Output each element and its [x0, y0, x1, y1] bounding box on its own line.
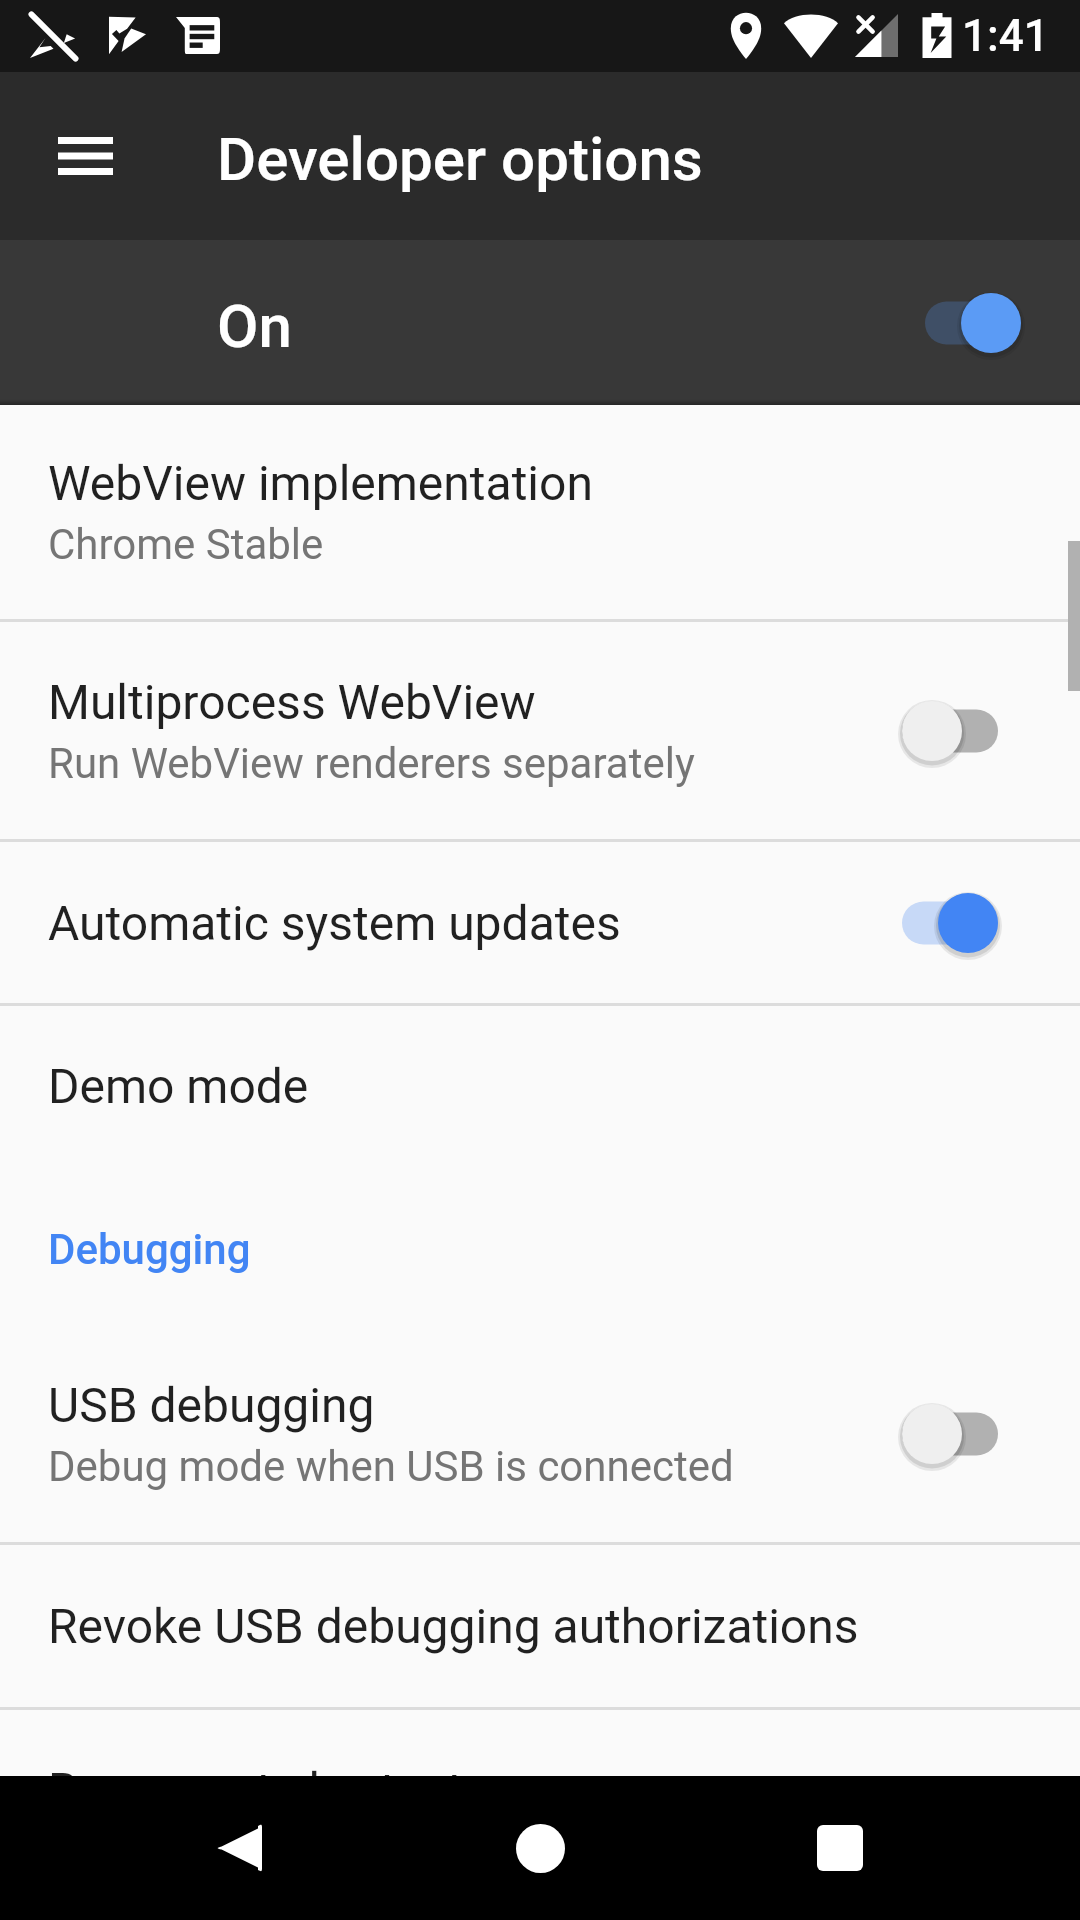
button[interactable]: Open navigation menu: [30, 101, 140, 211]
staticText: WebView implementation: [48, 455, 593, 511]
button[interactable]: Automatic system updates: [0, 842, 1080, 1003]
button[interactable]: Home: [490, 1798, 590, 1898]
staticText: Bug report shortcut: [48, 1762, 463, 1776]
staticText: Multiprocess WebView: [48, 674, 536, 730]
staticText: On: [217, 291, 292, 361]
staticText: Demo mode: [48, 1058, 309, 1114]
staticText: Debugging: [48, 1225, 251, 1274]
button[interactable]: Recent apps: [790, 1798, 890, 1898]
staticText: Debug mode when USB is connected: [48, 1442, 734, 1491]
staticText: 1:41: [962, 10, 1049, 62]
staticText: Chrome Stable: [48, 520, 324, 569]
staticText: Revoke USB debugging authorizations: [48, 1598, 859, 1654]
staticText: Developer options: [217, 124, 703, 194]
button[interactable]: Multiprocess WebView: [0, 622, 1080, 839]
button[interactable]: Back: [190, 1798, 290, 1898]
button[interactable]: Revoke USB debugging authorizations: [0, 1545, 1080, 1707]
button[interactable]: WebView implementation: [0, 405, 1080, 619]
button[interactable]: USB debugging: [0, 1326, 1080, 1542]
button[interactable]: Demo mode: [0, 1006, 1080, 1166]
staticText: Automatic system updates: [48, 895, 621, 951]
staticText: Run WebView renderers separately: [48, 739, 695, 788]
staticText: USB debugging: [48, 1377, 375, 1433]
button[interactable]: On: [0, 240, 1080, 405]
button[interactable]: Bug report shortcut: [0, 1710, 1080, 1776]
